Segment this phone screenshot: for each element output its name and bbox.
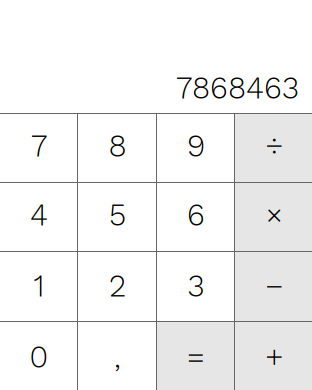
- button[interactable]: −: [235, 251, 312, 321]
- button[interactable]: 5: [78, 182, 157, 251]
- staticText: −: [265, 268, 284, 304]
- staticText: 0: [29, 339, 48, 375]
- button[interactable]: 8: [78, 113, 157, 182]
- button[interactable]: 6: [157, 182, 235, 251]
- button[interactable]: 7: [0, 113, 78, 182]
- button[interactable]: ,: [78, 321, 157, 390]
- button[interactable]: 4: [0, 182, 78, 251]
- staticText: +: [265, 339, 284, 375]
- staticText: 7: [31, 128, 47, 164]
- staticText: 8: [108, 128, 126, 164]
- staticText: 9: [187, 128, 205, 164]
- button[interactable]: 9: [157, 113, 235, 182]
- staticText: 3: [187, 268, 204, 304]
- button[interactable]: ÷: [235, 113, 312, 182]
- button[interactable]: 3: [157, 251, 235, 321]
- staticText: ×: [265, 197, 284, 233]
- button[interactable]: 0: [0, 321, 78, 390]
- staticText: 7868463: [176, 70, 299, 106]
- staticText: ÷: [265, 128, 284, 164]
- button[interactable]: 2: [78, 251, 157, 321]
- button[interactable]: 1: [0, 251, 78, 321]
- staticText: 5: [109, 197, 126, 233]
- staticText: 2: [109, 268, 126, 304]
- staticText: 1: [33, 268, 44, 304]
- button[interactable]: ×: [235, 182, 312, 251]
- staticText: 4: [30, 197, 48, 233]
- staticText: ,: [114, 339, 121, 375]
- button[interactable]: =: [157, 321, 235, 390]
- button[interactable]: +: [235, 321, 312, 390]
- staticText: =: [186, 339, 205, 375]
- staticText: 6: [187, 197, 205, 233]
